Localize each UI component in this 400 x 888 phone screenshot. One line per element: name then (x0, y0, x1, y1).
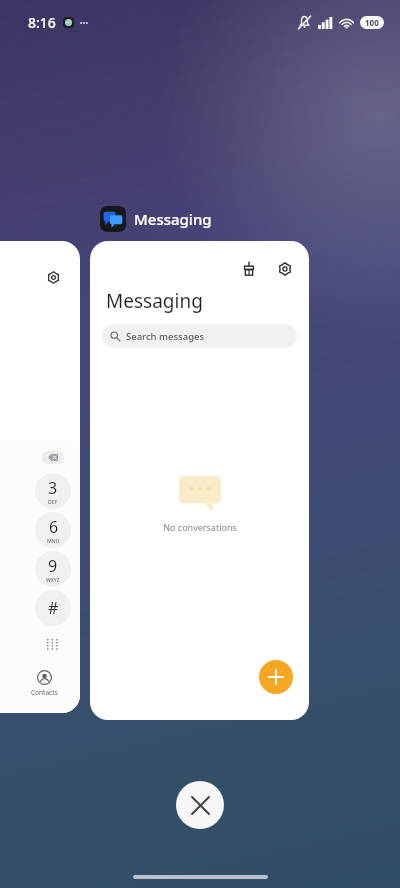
staticText: 6 (49, 516, 59, 538)
staticText: Messaging (134, 209, 212, 229)
button[interactable]: 3 (35, 473, 71, 509)
button[interactable]: Clean up (237, 257, 261, 281)
staticText: 9 (48, 555, 58, 577)
staticText: # (48, 597, 59, 619)
staticText: 3 (48, 477, 58, 499)
button[interactable]: 6 (35, 512, 71, 548)
staticText: Messaging (106, 288, 203, 314)
button[interactable]: Clear all (176, 781, 224, 829)
button[interactable]: # (35, 590, 71, 626)
button[interactable]: 9 (35, 551, 71, 587)
staticText: Search messages (126, 330, 205, 343)
staticText: MNO (47, 538, 60, 545)
button[interactable]: New conversation (259, 660, 293, 694)
staticText: Contacts (31, 688, 58, 697)
button[interactable]: Search messages (102, 324, 297, 348)
button[interactable]: Settings (42, 266, 64, 288)
staticText: 100 (365, 17, 379, 28)
button[interactable]: Clean up (90, 241, 309, 720)
button[interactable]: Backspace (42, 451, 64, 464)
button[interactable]: Settings (273, 257, 297, 281)
staticText: WXYZ (46, 577, 60, 584)
staticText: 8:16 (28, 13, 56, 32)
staticText: No conversations (163, 521, 237, 533)
button[interactable]: Settings (0, 241, 80, 713)
staticText: DEF (48, 499, 58, 506)
button[interactable]: Keypad (43, 635, 61, 653)
button[interactable]: Contacts (31, 670, 58, 697)
